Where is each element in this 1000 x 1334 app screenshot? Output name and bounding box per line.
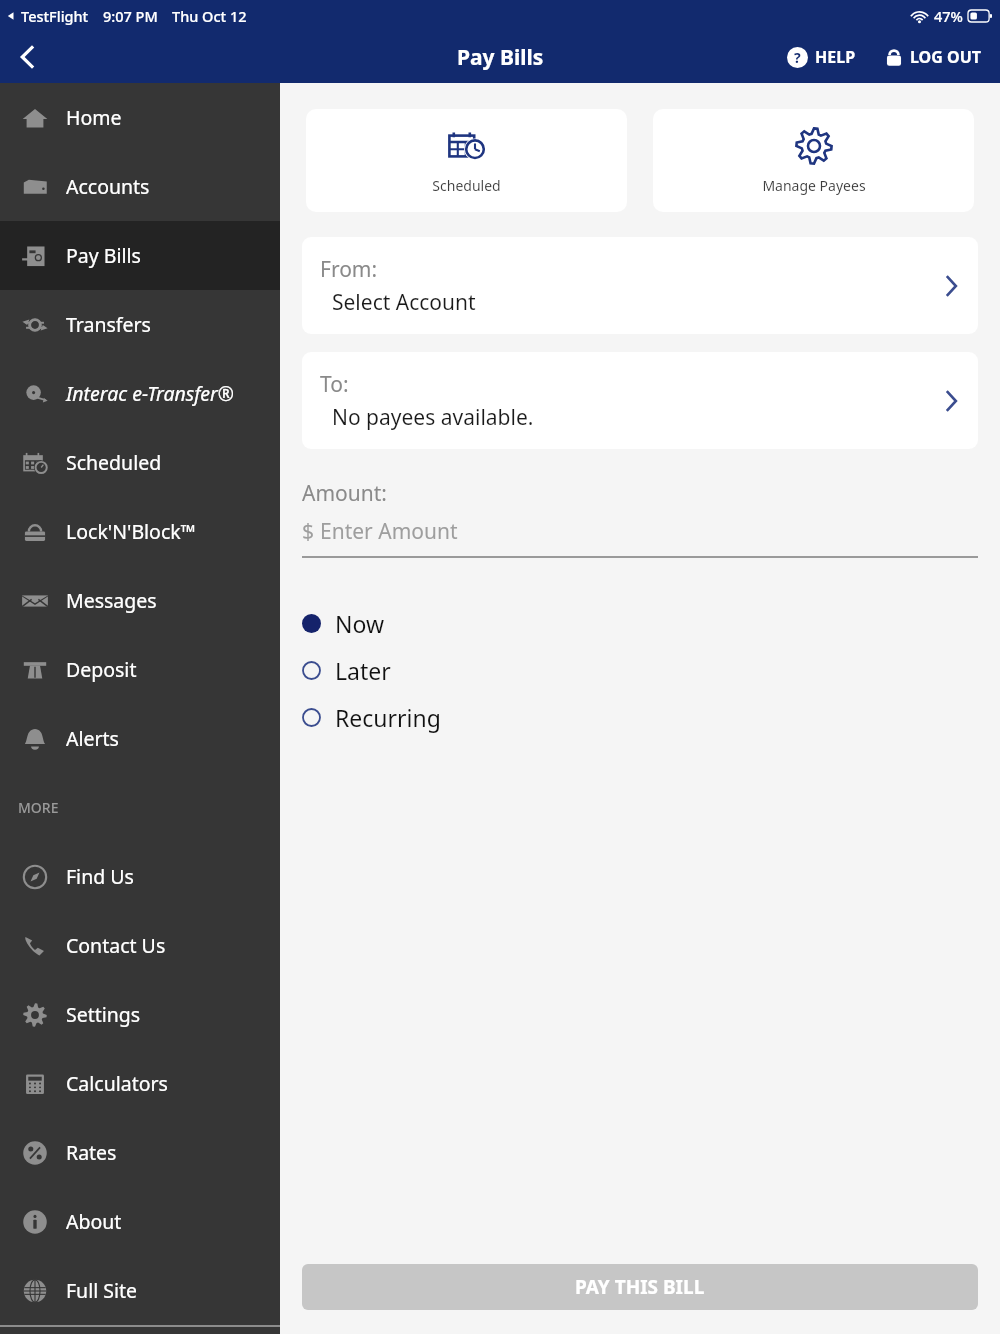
staticText: Rates <box>66 1139 117 1166</box>
staticText: ? <box>794 48 801 67</box>
button[interactable]: ? <box>783 40 860 74</box>
staticText: PAY THIS BILL <box>575 1274 705 1300</box>
button[interactable]: Rates <box>0 1118 280 1187</box>
staticText: Full Site <box>66 1277 138 1304</box>
staticText: Thu Oct 12 <box>172 6 247 26</box>
staticText: MORE <box>18 798 59 817</box>
button[interactable]: Find Us <box>0 842 280 911</box>
staticText: 47% <box>934 6 963 26</box>
staticText: Settings <box>66 1001 141 1028</box>
button[interactable]: Accounts <box>0 152 280 221</box>
button[interactable]: LOG OUT <box>882 40 986 74</box>
staticText: Find Us <box>66 863 134 890</box>
staticText: Later <box>335 655 391 686</box>
button[interactable]: Messages <box>0 566 280 635</box>
staticText: TestFlight <box>21 6 89 26</box>
staticText: Calculators <box>66 1070 168 1097</box>
button[interactable]: Alerts <box>0 704 280 773</box>
button[interactable]: Transfers <box>0 290 280 359</box>
button[interactable]: Full Site <box>0 1256 280 1325</box>
button[interactable]: Pay Bills <box>0 221 280 290</box>
button[interactable]: Contact Us <box>0 911 280 980</box>
staticText: 9:07 PM <box>103 6 158 26</box>
staticText: Lock'N'Block™ <box>66 518 196 545</box>
staticText: Contact Us <box>66 932 166 959</box>
button[interactable]: $ <box>302 517 978 546</box>
staticText: No payees available. <box>332 403 534 432</box>
staticText: LOG OUT <box>910 46 982 68</box>
staticText: Amount: <box>302 479 387 508</box>
staticText: Messages <box>66 587 157 614</box>
button[interactable]: From: <box>302 237 978 334</box>
button[interactable]: To: <box>302 352 978 449</box>
button[interactable]: Calculators <box>0 1049 280 1118</box>
staticText: Pay Bills <box>457 43 544 72</box>
button[interactable]: Back <box>0 31 56 83</box>
staticText: Deposit <box>66 656 137 683</box>
staticText: $ <box>302 517 320 546</box>
button[interactable]: Deposit <box>0 635 280 704</box>
staticText: Manage Payees <box>762 176 866 195</box>
button[interactable]: Scheduled <box>306 109 627 212</box>
button[interactable]: Home <box>0 83 280 152</box>
staticText: Scheduled <box>432 176 501 195</box>
button[interactable]: Recurring <box>280 694 1000 741</box>
staticText: HELP <box>815 46 856 68</box>
staticText: About <box>66 1208 122 1235</box>
staticText: Select Account <box>332 288 476 317</box>
button[interactable]: Lock'N'Block™ <box>0 497 280 566</box>
staticText: Transfers <box>66 311 151 338</box>
staticText: Now <box>335 608 385 639</box>
staticText: Scheduled <box>66 449 162 476</box>
button[interactable]: Later <box>280 647 1000 694</box>
staticText: Interac e-Transfer® <box>66 380 235 407</box>
button[interactable]: About <box>0 1187 280 1256</box>
staticText: Home <box>66 104 122 131</box>
button[interactable]: Now <box>280 600 1000 647</box>
button[interactable]: Scheduled <box>0 428 280 497</box>
button[interactable]: Settings <box>0 980 280 1049</box>
staticText: Alerts <box>66 725 119 752</box>
staticText: Accounts <box>66 173 150 200</box>
staticText: To: <box>320 370 349 399</box>
button[interactable]: PAY THIS BILL <box>302 1264 978 1310</box>
staticText: From: <box>320 255 378 284</box>
staticText: Enter Amount <box>320 517 458 546</box>
staticText: Pay Bills <box>66 242 141 269</box>
staticText: Recurring <box>335 702 441 733</box>
button[interactable]: Interac e-Transfer® <box>0 359 280 428</box>
button[interactable]: Manage Payees <box>653 109 974 212</box>
